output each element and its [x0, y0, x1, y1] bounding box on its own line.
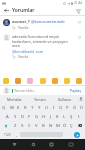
- button[interactable]: Emoji: [64, 78, 70, 84]
- button[interactable]: A: [3, 112, 11, 121]
- staticText: asumat_7: [12, 19, 30, 24]
- button[interactable]: Y: [36, 103, 43, 112]
- button[interactable]: H: [40, 112, 47, 121]
- button[interactable]: D: [19, 112, 26, 121]
- button[interactable]: U: [43, 103, 50, 112]
- button[interactable]: E: [15, 103, 22, 112]
- button[interactable]: N: [47, 121, 54, 130]
- button[interactable]: Beğen: [76, 19, 82, 25]
- staticText: R: [24, 105, 27, 111]
- button[interactable]: Emoji: [3, 78, 9, 84]
- button[interactable]: Shift: [0, 121, 11, 130]
- staticText: J: [50, 114, 52, 120]
- staticText: Yorum ekle...: [14, 88, 36, 93]
- button[interactable]: Emoji: [76, 78, 82, 84]
- button[interactable]: X: [19, 121, 26, 130]
- button[interactable]: I: [50, 103, 57, 112]
- staticText: G: [35, 114, 39, 120]
- staticText: E: [17, 105, 20, 111]
- button[interactable]: M: [54, 121, 61, 130]
- staticText: W: [10, 105, 14, 111]
- button[interactable]: Ç: [68, 121, 75, 130]
- staticText: 1y: [12, 26, 16, 30]
- staticText: @kimdihadd .com: [12, 49, 44, 54]
- button[interactable]: Geri: [10, 140, 19, 149]
- button[interactable]: Yanıtla: [18, 26, 29, 30]
- staticText: L: [63, 114, 66, 120]
- staticText: Tamam: [34, 97, 46, 102]
- staticText: Ç: [70, 123, 73, 129]
- button[interactable]: Paylaş: [69, 87, 82, 94]
- staticText: Paylaş: [70, 88, 81, 93]
- staticText: V: [35, 123, 38, 129]
- button[interactable]: G: [33, 112, 40, 121]
- button[interactable]: adınızda Sorunlarınd ençok: [0, 32, 85, 61]
- button[interactable]: Sil: [75, 121, 85, 130]
- button[interactable]: Emoji: [40, 78, 46, 84]
- button[interactable]: W: [8, 103, 15, 112]
- button[interactable]: .: [63, 131, 70, 138]
- staticText: kodarıların, sitemde ve projeyen uten: [12, 39, 76, 49]
- button[interactable]: Ü: [78, 103, 85, 112]
- staticText: I: [78, 114, 80, 120]
- staticText: C: [28, 123, 31, 129]
- button[interactable]: Tamam: [27, 95, 52, 103]
- button[interactable]: Geri: [3, 7, 10, 14]
- button[interactable]: Sesle yaz: [77, 95, 84, 103]
- button[interactable]: ?123: [1, 131, 13, 138]
- staticText: U: [45, 105, 49, 111]
- button[interactable]: B: [40, 121, 47, 130]
- staticText: Y: [38, 105, 41, 111]
- staticText: adınızda Sorunlarınd ençok: [12, 34, 60, 39]
- button[interactable]: Merhaba: [1, 95, 27, 103]
- button[interactable]: P: [64, 103, 71, 112]
- button[interactable]: T: [29, 103, 36, 112]
- button[interactable]: ,: [13, 131, 20, 138]
- button[interactable]: Emoji: [15, 78, 21, 84]
- staticText: Ş: [70, 114, 73, 120]
- button[interactable]: Gönder: [74, 132, 80, 138]
- button[interactable]: L: [61, 112, 68, 121]
- staticText: 1y: [12, 55, 16, 59]
- button[interactable]: Emoji: [52, 78, 58, 84]
- staticText: S: [14, 114, 17, 120]
- staticText: T: [31, 105, 34, 111]
- button[interactable]: Ş: [68, 112, 75, 121]
- button[interactable]: J: [47, 112, 54, 121]
- button[interactable]: Q: [0, 103, 8, 112]
- button[interactable]: R: [22, 103, 29, 112]
- button[interactable]: Ö: [61, 121, 68, 130]
- button[interactable]: Yanıtla: [18, 55, 29, 59]
- button[interactable]: Son kullanılanlar: [47, 140, 56, 149]
- staticText: .: [66, 132, 68, 137]
- button[interactable]: Beğen: [76, 34, 82, 40]
- staticText: P: [66, 105, 69, 111]
- staticText: 21:44: [74, 1, 83, 5]
- button[interactable]: Ana ekran: [29, 140, 38, 149]
- button[interactable]: Z: [11, 121, 19, 130]
- staticText: Z: [14, 123, 17, 129]
- button[interactable]: V: [33, 121, 40, 130]
- staticText: X: [21, 123, 24, 129]
- staticText: O: [59, 105, 63, 111]
- button[interactable]: Emoji: [27, 78, 33, 84]
- button[interactable]: F: [26, 112, 33, 121]
- staticText: Ö: [63, 123, 67, 129]
- button[interactable]: Klavyeyi gizle: [66, 140, 75, 149]
- staticText: Yanıtla: [18, 26, 29, 30]
- staticText: ?123: [4, 133, 11, 137]
- button[interactable]: C: [26, 121, 33, 130]
- button[interactable]: Filtrele: [74, 7, 82, 15]
- staticText: ,: [16, 132, 18, 137]
- button[interactable]: I: [75, 112, 82, 121]
- staticText: I: [53, 105, 55, 111]
- staticText: M: [56, 123, 60, 129]
- button[interactable]: K: [54, 112, 61, 121]
- button[interactable]: O: [57, 103, 64, 112]
- staticText: K: [56, 114, 59, 120]
- button[interactable]: S: [11, 112, 19, 121]
- button[interactable]: Ğ: [71, 103, 78, 112]
- button[interactable]: asumat_7: [0, 17, 85, 32]
- button[interactable]: Kullanıcı: [52, 95, 77, 103]
